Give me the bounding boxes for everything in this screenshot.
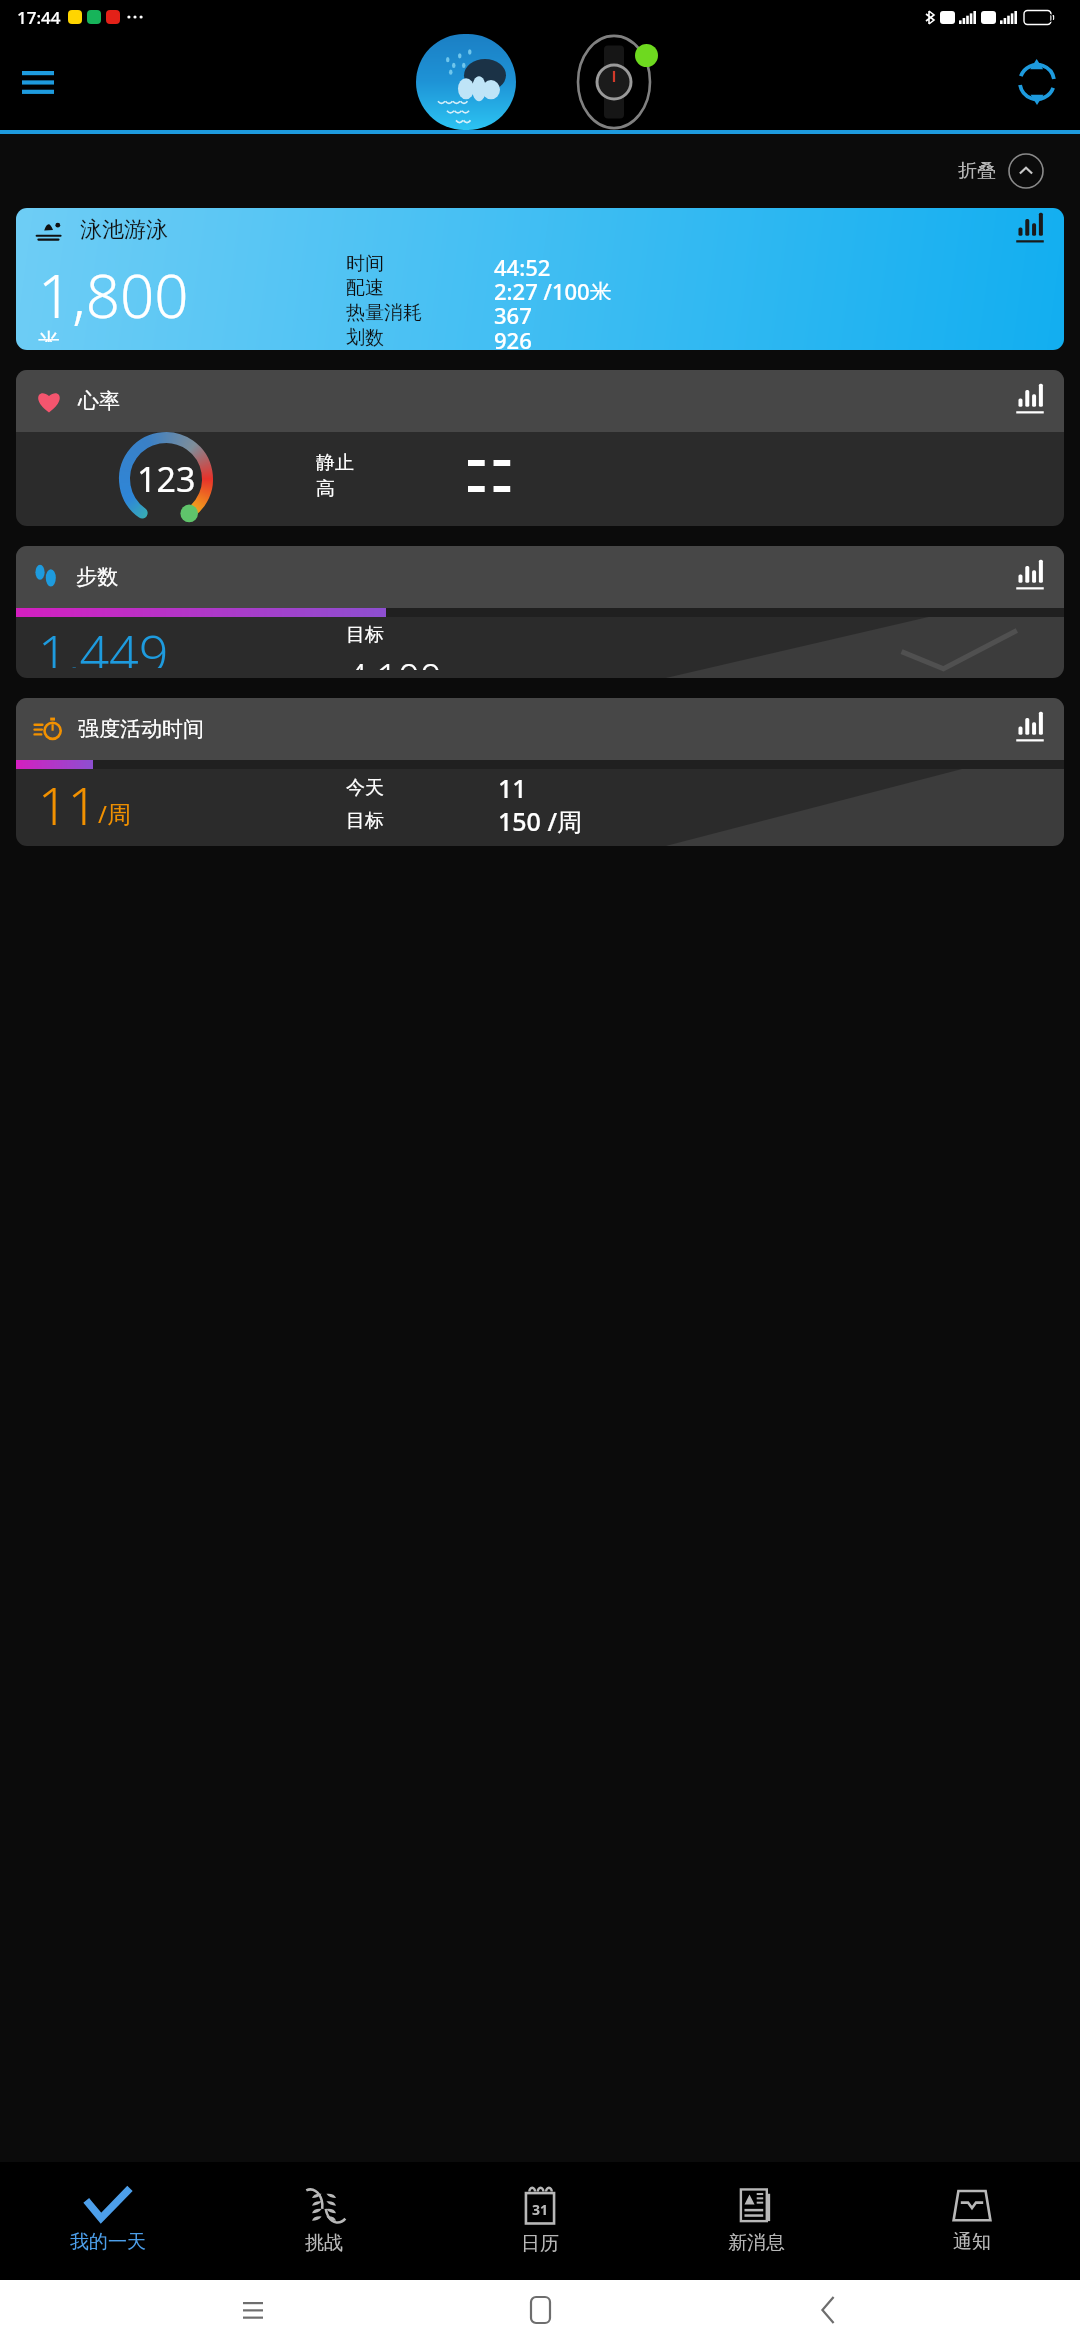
staticText: 150 /周 [498, 804, 583, 838]
other: Chart [1014, 385, 1046, 417]
button[interactable]: Back [793, 2280, 863, 2340]
button[interactable]: Device [564, 34, 664, 130]
staticText: 17:44 [17, 6, 61, 29]
staticText: 通知 [953, 2230, 991, 2254]
staticText: 划数 [346, 326, 494, 350]
staticText: 强度活动时间 [78, 716, 204, 742]
other: Chart [1014, 713, 1046, 745]
button[interactable]: Sync [994, 39, 1080, 125]
staticText: 高 [316, 477, 468, 501]
button[interactable]: 强度活动时间 [16, 698, 1064, 760]
staticText: 1,449 [38, 617, 169, 668]
staticText: 926 [494, 325, 532, 350]
staticText: 步数 [76, 564, 118, 590]
button[interactable]: 步数 [16, 546, 1064, 608]
staticText: 11 [38, 769, 98, 836]
staticText: 2:27 /100米 [494, 276, 612, 300]
button[interactable]: 通知 [864, 2162, 1080, 2280]
staticText: 90 [1041, 10, 1054, 25]
staticText: 367 [494, 300, 532, 325]
button[interactable]: 步数 [16, 546, 1064, 678]
staticText: /周 [98, 797, 131, 830]
button[interactable]: 心率 [16, 370, 1064, 526]
other: Chart [1014, 214, 1046, 246]
staticText: 我的一天 [70, 2230, 146, 2254]
staticText: 4,100 [346, 651, 442, 670]
staticText: 米 [38, 328, 60, 342]
button[interactable]: Home [505, 2280, 575, 2340]
button[interactable]: 挑战 [216, 2162, 432, 2280]
button[interactable]: Activity [416, 34, 516, 130]
staticText: 新消息 [728, 2231, 785, 2255]
staticText: 目标 [346, 623, 384, 647]
staticText: 热量消耗 [346, 301, 494, 325]
staticText: 配速 [346, 276, 494, 300]
button[interactable]: 泳池游泳 [16, 208, 1064, 350]
staticText: 44:52 [494, 252, 551, 276]
staticText: 时间 [346, 252, 494, 276]
staticText: 目标 [346, 809, 498, 833]
button[interactable]: 新消息 [648, 2162, 864, 2280]
button[interactable]: 强度活动时间 [16, 698, 1064, 846]
staticText: 静止 [316, 451, 468, 475]
staticText: 泳池游泳 [80, 216, 168, 244]
button[interactable]: Menu [0, 44, 76, 120]
staticText: 挑战 [305, 2231, 343, 2255]
button[interactable]: Recents [218, 2280, 288, 2340]
staticText: 日历 [521, 2232, 559, 2256]
staticText: 11 [498, 771, 527, 804]
staticText: 31 [532, 2200, 549, 2219]
staticText: 123 [137, 456, 196, 502]
button[interactable]: 折叠 [952, 147, 1050, 195]
button[interactable]: 31 [432, 2162, 648, 2280]
other: Chart [1014, 561, 1046, 593]
staticText: 今天 [346, 776, 498, 800]
staticText: 折叠 [958, 159, 996, 183]
button[interactable]: 心率 [16, 370, 1064, 432]
button[interactable]: 我的一天 [0, 2162, 216, 2280]
staticText: 1,800 [38, 254, 189, 336]
staticText: 心率 [78, 388, 120, 414]
